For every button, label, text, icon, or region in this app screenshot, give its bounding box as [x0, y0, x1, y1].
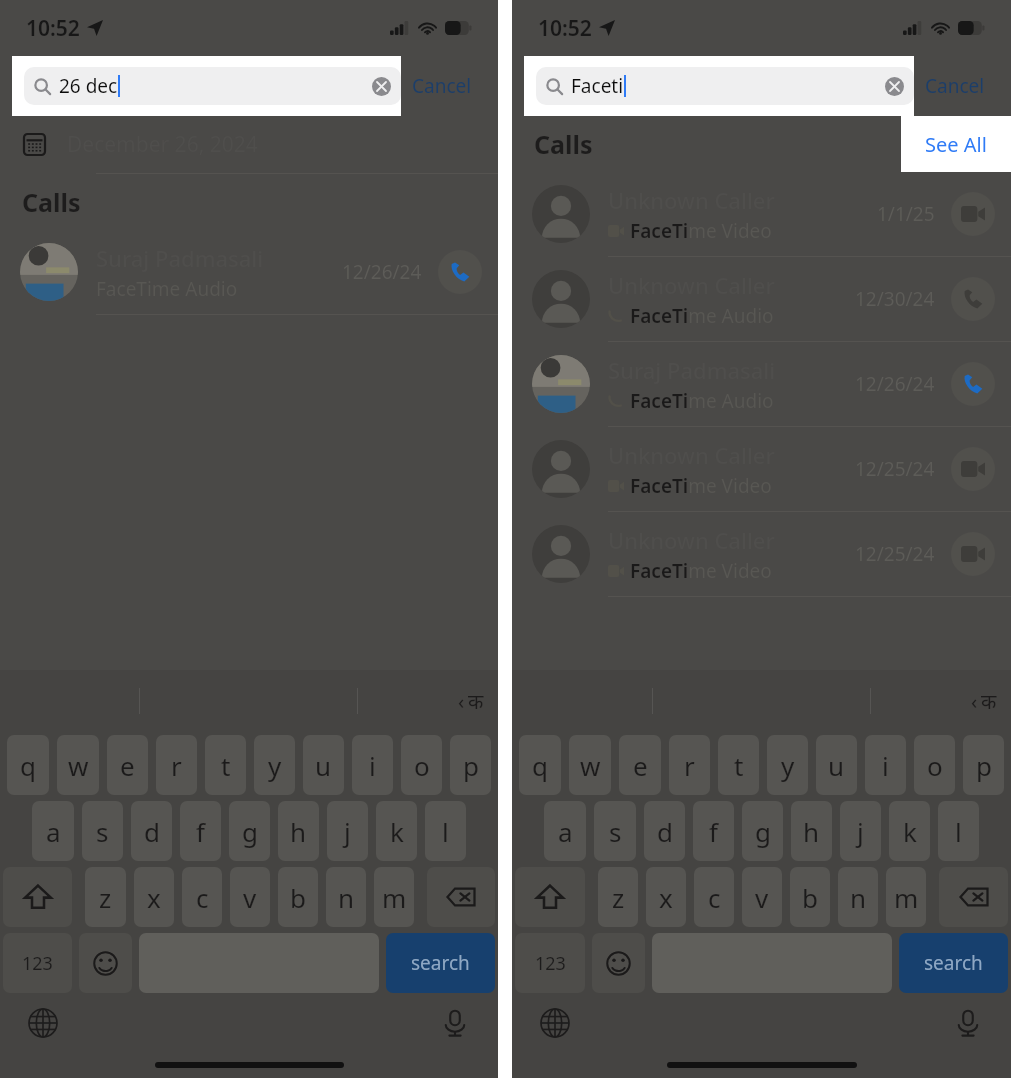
button[interactable]: Shift — [3, 867, 72, 927]
button[interactable]: Cancel — [410, 71, 474, 101]
button[interactable]: p — [963, 735, 1004, 795]
button[interactable]: h — [278, 801, 319, 861]
staticText: j — [344, 814, 351, 849]
button[interactable]: r — [156, 735, 197, 795]
button[interactable]: Dictation — [951, 1006, 985, 1040]
button[interactable]: Emoji — [592, 933, 645, 993]
button[interactable]: k — [889, 801, 930, 861]
button[interactable]: Unknown Caller — [512, 257, 1011, 341]
button[interactable]: FaceTime Video — [951, 192, 995, 236]
button[interactable]: e — [619, 735, 661, 795]
button[interactable]: u — [816, 735, 857, 795]
button[interactable]: Unknown Caller — [512, 172, 1011, 256]
button[interactable]: Unknown Caller — [512, 512, 1011, 596]
button[interactable]: l — [425, 801, 466, 861]
button[interactable]: a — [544, 801, 586, 861]
button[interactable]: Suraj Padmasali — [512, 342, 1011, 426]
button[interactable]: y — [254, 735, 295, 795]
button[interactable]: p — [450, 735, 491, 795]
button[interactable]: d — [644, 801, 685, 861]
button[interactable]: x — [134, 867, 174, 927]
button[interactable]: Dictation — [438, 1006, 472, 1040]
button[interactable]: Call back — [438, 250, 482, 294]
button[interactable]: search — [899, 933, 1008, 993]
button[interactable]: x — [646, 867, 686, 927]
button[interactable]: Unknown Caller — [512, 427, 1011, 511]
button[interactable]: Shift — [515, 867, 585, 927]
button[interactable]: g — [742, 801, 783, 861]
button[interactable]: h — [791, 801, 832, 861]
button[interactable]: j — [840, 801, 881, 861]
button[interactable]: j — [327, 801, 368, 861]
button[interactable]: 26 dec — [24, 67, 401, 105]
button[interactable]: b — [278, 867, 318, 927]
button[interactable]: k — [376, 801, 417, 861]
button[interactable]: 123 — [3, 933, 72, 993]
button[interactable]: l — [938, 801, 979, 861]
button[interactable]: o — [914, 735, 955, 795]
staticText: x — [147, 880, 161, 915]
button[interactable]: Call back — [951, 277, 995, 321]
button[interactable]: w — [569, 735, 611, 795]
button[interactable]: FaceTime Video — [951, 447, 995, 491]
button[interactable]: m — [374, 867, 414, 927]
staticText: p — [976, 748, 992, 783]
staticText: t — [221, 748, 231, 783]
button[interactable]: c — [694, 867, 734, 927]
button[interactable]: f — [180, 801, 221, 861]
button[interactable]: search — [386, 933, 495, 993]
button[interactable]: a — [32, 801, 74, 861]
button[interactable]: v — [742, 867, 782, 927]
button[interactable]: q — [519, 735, 561, 795]
button[interactable]: c — [182, 867, 222, 927]
button[interactable]: Faceti — [536, 67, 914, 105]
button[interactable]: i — [352, 735, 393, 795]
button[interactable]: m — [886, 867, 926, 927]
button[interactable]: Change keyboard — [26, 1006, 60, 1040]
button[interactable]: i — [865, 735, 906, 795]
staticText: i — [882, 748, 889, 783]
button[interactable]: u — [303, 735, 344, 795]
button[interactable]: q — [7, 735, 49, 795]
button[interactable]: Clear text — [372, 77, 391, 96]
button[interactable]: t — [205, 735, 246, 795]
button[interactable]: Next keyboard language — [981, 688, 997, 715]
button[interactable]: 123 — [515, 933, 585, 993]
button[interactable]: b — [790, 867, 830, 927]
button[interactable]: Emoji — [79, 933, 132, 993]
button[interactable]: n — [326, 867, 366, 927]
button[interactable]: t — [718, 735, 759, 795]
button[interactable]: z — [598, 867, 638, 927]
button[interactable]: Suraj Padmasali — [0, 230, 498, 314]
button[interactable]: Next keyboard language — [468, 688, 484, 715]
staticText: s — [609, 814, 622, 849]
button[interactable]: w — [57, 735, 99, 795]
button[interactable]: n — [838, 867, 878, 927]
button[interactable]: g — [229, 801, 270, 861]
button[interactable]: Backspace — [427, 867, 495, 927]
button[interactable]: v — [230, 867, 270, 927]
button[interactable]: r — [669, 735, 710, 795]
button[interactable]: Call back — [951, 362, 995, 406]
button[interactable]: Change keyboard — [538, 1006, 572, 1040]
button[interactable]: December 26, 2024 — [0, 116, 498, 173]
button[interactable]: f — [693, 801, 734, 861]
staticText: q — [532, 748, 548, 783]
button[interactable]: Clear text — [885, 77, 904, 96]
button[interactable]: y — [767, 735, 808, 795]
button[interactable]: Cancel — [923, 71, 987, 101]
staticText: Cancel — [925, 73, 985, 99]
button[interactable]: e — [107, 735, 148, 795]
button[interactable]: Backspace — [939, 867, 1008, 927]
button[interactable]: See All — [901, 116, 1011, 172]
staticText: r — [171, 748, 182, 783]
button[interactable]: s — [594, 801, 636, 861]
button[interactable]: o — [401, 735, 442, 795]
button[interactable]: FaceTime Video — [951, 532, 995, 576]
button[interactable]: d — [131, 801, 172, 861]
button[interactable]: z — [85, 867, 126, 927]
button[interactable]: s — [82, 801, 123, 861]
